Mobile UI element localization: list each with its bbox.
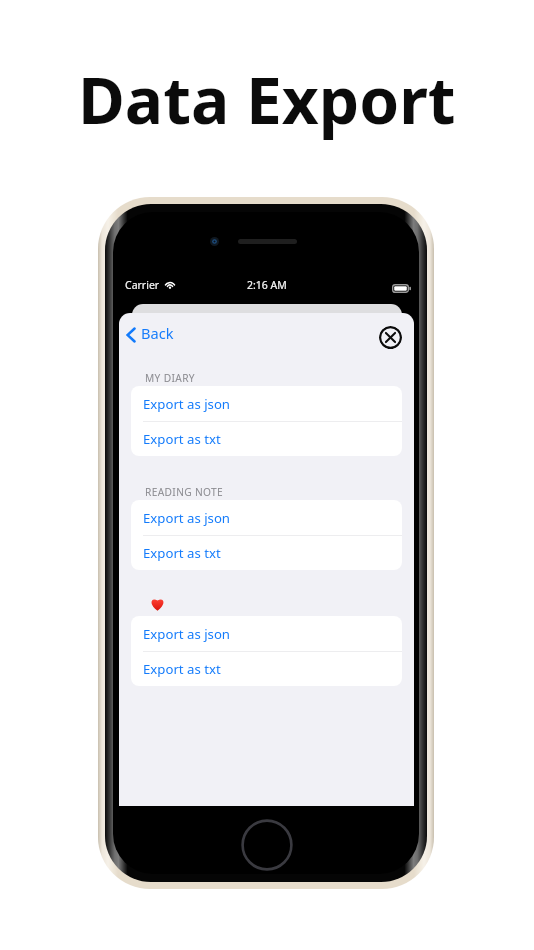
button[interactable]: Export as json xyxy=(131,616,402,651)
staticText: Export as txt xyxy=(143,430,221,448)
staticText: READING NOTE xyxy=(145,485,224,499)
staticText: Data Export xyxy=(78,56,456,143)
staticText: Export as json xyxy=(143,509,231,527)
button[interactable]: Export as txt xyxy=(131,652,402,686)
button[interactable]: Export as json xyxy=(131,386,402,421)
button[interactable]: Back xyxy=(124,319,176,347)
button[interactable]: Close xyxy=(379,326,402,349)
button[interactable]: Export as txt xyxy=(131,536,402,570)
staticText: Export as txt xyxy=(143,660,221,678)
button[interactable]: Export as json xyxy=(131,500,402,535)
staticText: Carrier xyxy=(125,278,160,292)
staticText: MY DIARY xyxy=(145,371,195,385)
staticText: 2:16 AM xyxy=(247,278,287,292)
button[interactable]: Export as txt xyxy=(131,422,402,456)
staticText: Export as json xyxy=(143,625,231,643)
staticText: Export as txt xyxy=(143,544,221,562)
staticText: Export as json xyxy=(143,395,231,413)
staticText: Back xyxy=(141,323,174,343)
